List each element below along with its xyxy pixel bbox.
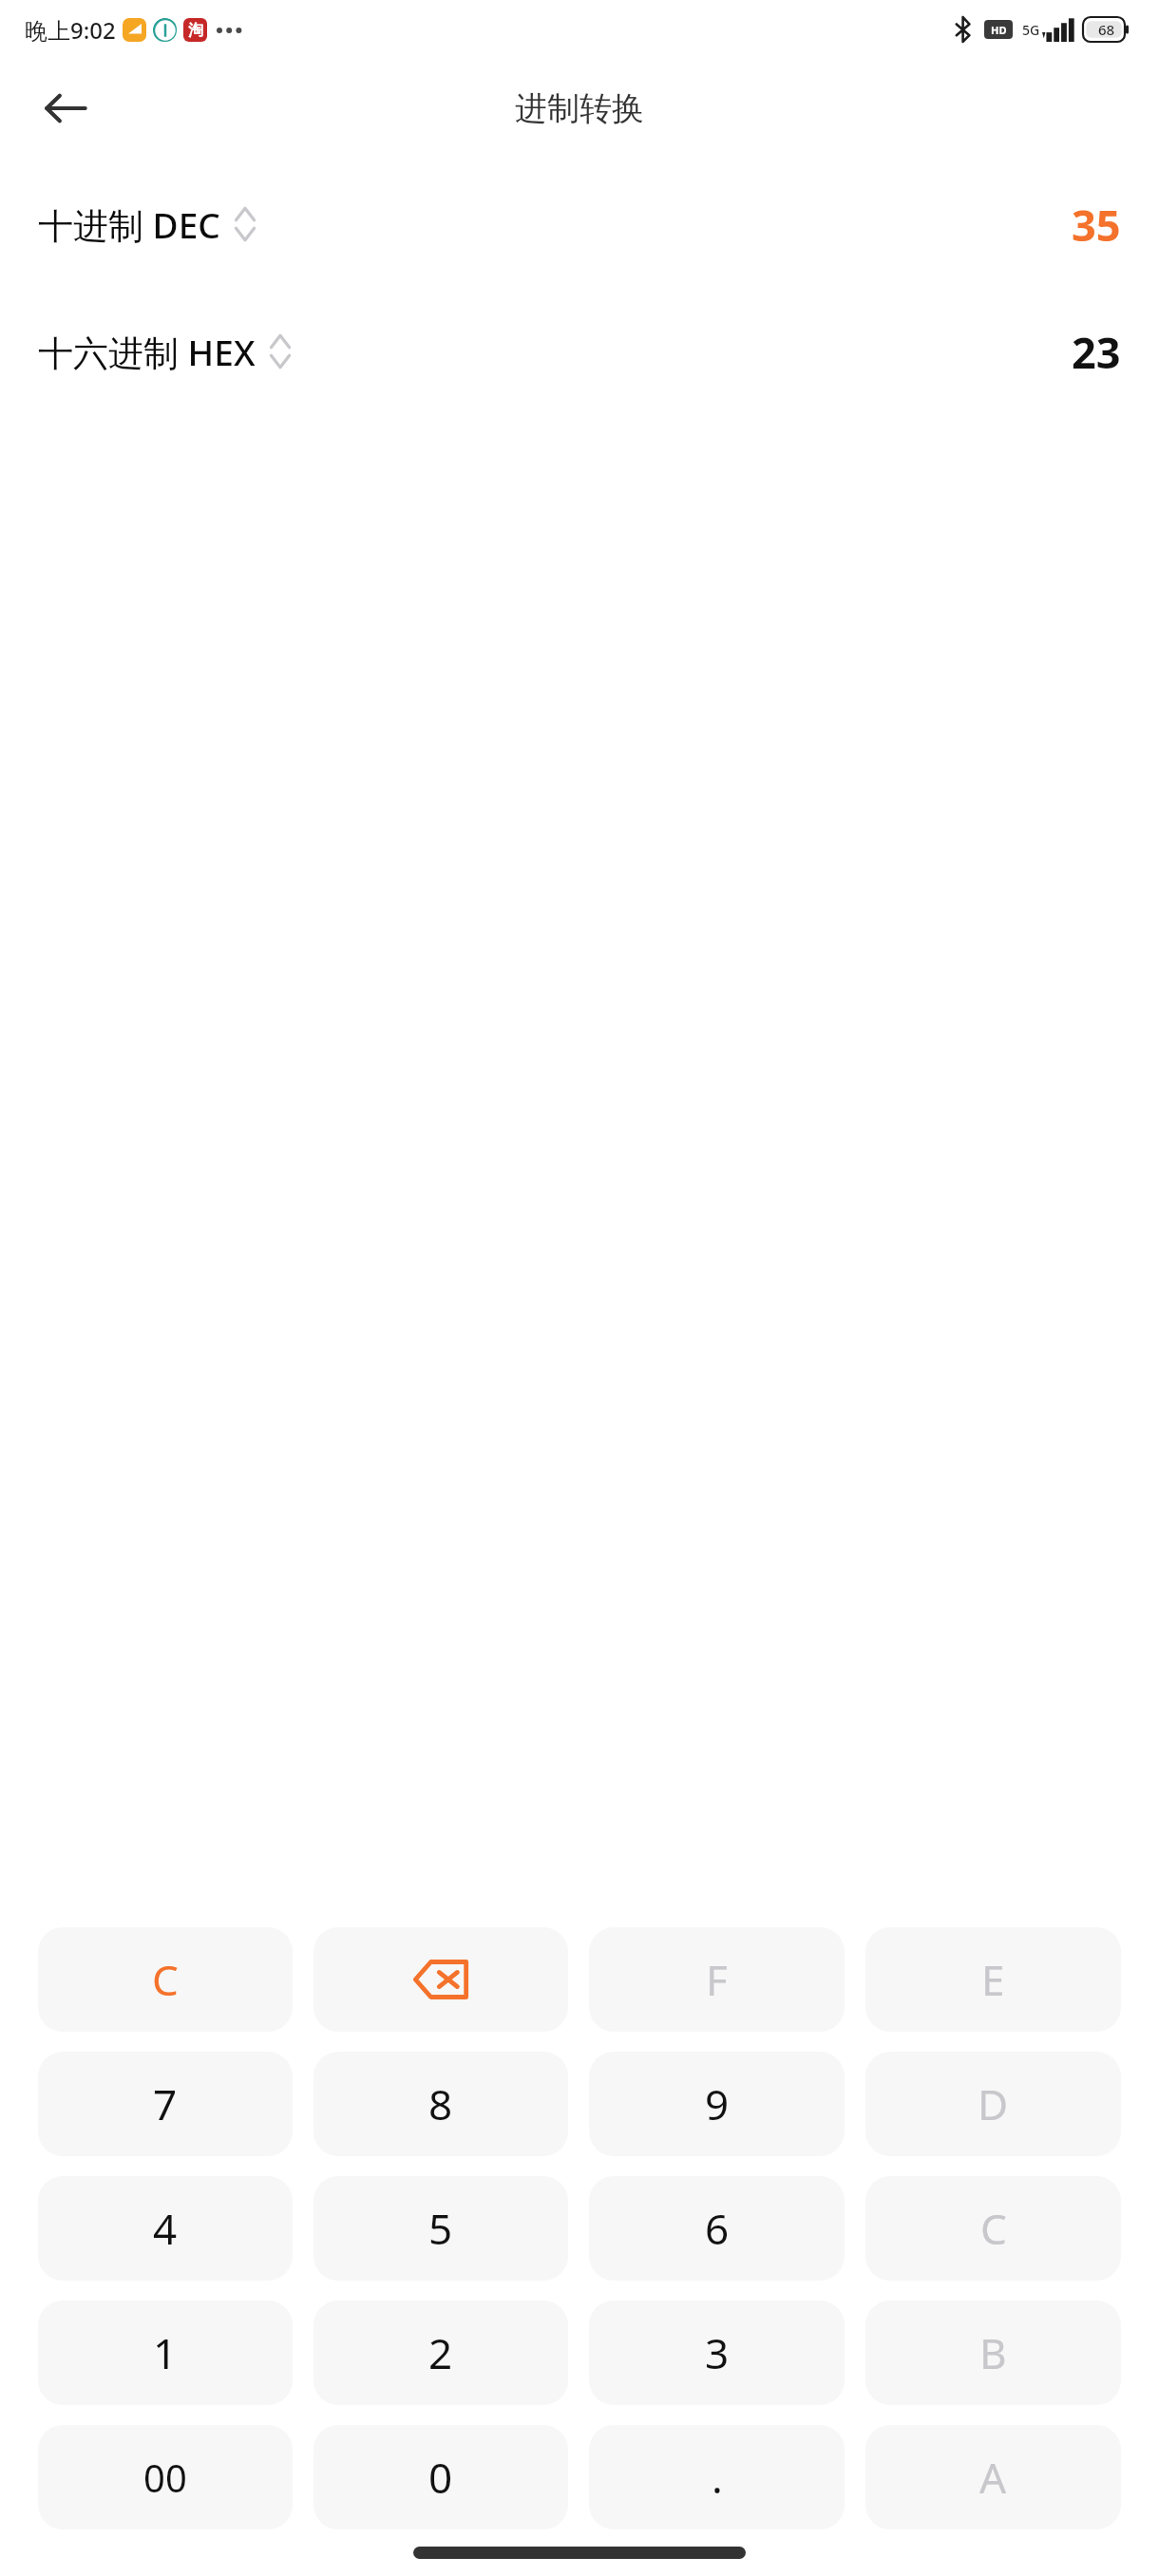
button[interactable]: E bbox=[865, 1927, 1121, 2032]
staticText: C bbox=[152, 1951, 179, 2008]
staticText: 00 bbox=[143, 2452, 187, 2503]
button[interactable]: C bbox=[38, 1927, 293, 2032]
button[interactable]: 十六进制 HEX bbox=[0, 306, 1159, 397]
staticText: A bbox=[979, 2449, 1007, 2506]
button[interactable]: 9 bbox=[589, 2052, 845, 2156]
button[interactable]: D bbox=[865, 2052, 1121, 2156]
button[interactable]: 00 bbox=[38, 2425, 293, 2529]
button[interactable]: 十进制 DEC bbox=[0, 179, 1159, 270]
staticText: 9 bbox=[705, 2075, 730, 2132]
staticText: 晚上9:02 bbox=[25, 14, 116, 46]
button[interactable]: . bbox=[589, 2425, 845, 2529]
button[interactable]: 7 bbox=[38, 2052, 293, 2156]
staticText: 23 bbox=[1072, 323, 1121, 381]
staticText: 进制转换 bbox=[515, 88, 644, 129]
button[interactable]: Backspace bbox=[313, 1927, 568, 2032]
staticText: 淘 bbox=[188, 21, 203, 40]
staticText: . bbox=[712, 2449, 723, 2506]
button[interactable]: 2 bbox=[313, 2301, 568, 2405]
staticText: 十六进制 HEX bbox=[38, 328, 256, 376]
staticText: 0 bbox=[428, 2449, 453, 2506]
button[interactable]: 0 bbox=[313, 2425, 568, 2529]
staticText: 4 bbox=[153, 2200, 178, 2257]
button[interactable]: 1 bbox=[38, 2301, 293, 2405]
staticText: F bbox=[706, 1951, 728, 2008]
button[interactable]: 8 bbox=[313, 2052, 568, 2156]
button[interactable]: B bbox=[865, 2301, 1121, 2405]
staticText: E bbox=[981, 1951, 1005, 2008]
button[interactable]: 3 bbox=[589, 2301, 845, 2405]
staticText: 5 bbox=[428, 2200, 453, 2257]
staticText: 3 bbox=[705, 2324, 730, 2381]
button[interactable]: Back bbox=[28, 71, 103, 145]
staticText: 8 bbox=[428, 2075, 453, 2132]
staticText: D bbox=[978, 2075, 1009, 2132]
staticText: C bbox=[980, 2200, 1007, 2257]
staticText: 7 bbox=[153, 2075, 178, 2132]
button[interactable]: 6 bbox=[589, 2176, 845, 2281]
button[interactable]: A bbox=[865, 2425, 1121, 2529]
staticText: 68 bbox=[1098, 20, 1115, 39]
button[interactable]: 4 bbox=[38, 2176, 293, 2281]
staticText: 6 bbox=[705, 2200, 730, 2257]
staticText: HD bbox=[991, 23, 1007, 37]
staticText: 十进制 DEC bbox=[38, 200, 220, 249]
button[interactable]: C bbox=[865, 2176, 1121, 2281]
button[interactable]: 5 bbox=[313, 2176, 568, 2281]
button[interactable]: F bbox=[589, 1927, 845, 2032]
staticText: 35 bbox=[1072, 196, 1121, 254]
staticText: 2 bbox=[428, 2324, 453, 2381]
staticText: 5G bbox=[1022, 21, 1040, 39]
staticText: B bbox=[979, 2324, 1007, 2381]
staticText: 1 bbox=[153, 2324, 178, 2381]
